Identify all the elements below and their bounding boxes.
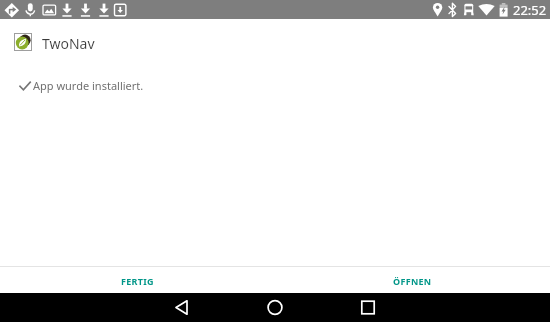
- button[interactable]: [244, 293, 306, 322]
- button[interactable]: FERTIG: [0, 269, 275, 293]
- button[interactable]: [337, 293, 399, 322]
- staticText: FERTIG: [121, 275, 154, 287]
- button[interactable]: [151, 293, 213, 322]
- button[interactable]: ÖFFNEN: [275, 269, 550, 293]
- staticText: TwoNav: [42, 34, 95, 53]
- staticText: App wurde installiert.: [33, 78, 144, 93]
- staticText: 22:52: [513, 1, 547, 19]
- staticText: ÖFFNEN: [393, 275, 432, 287]
